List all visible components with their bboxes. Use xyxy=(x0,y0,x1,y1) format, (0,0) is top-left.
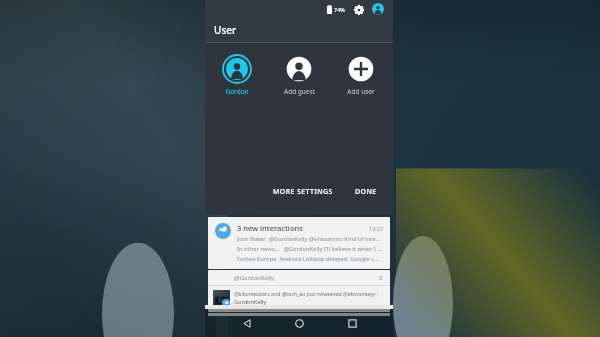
button[interactable]: Add guest xyxy=(273,53,325,98)
button[interactable]: Settings xyxy=(352,3,365,16)
staticText: Add user xyxy=(347,87,375,96)
staticText: User xyxy=(214,23,237,37)
button[interactable]: Current user xyxy=(371,2,385,16)
button[interactable]: Home xyxy=(288,312,310,334)
staticText: @GordonKelly xyxy=(234,274,379,282)
staticText: Forbes Europe Android Lollipop delayed. … xyxy=(237,255,379,263)
staticText: GordonKelly xyxy=(234,298,267,306)
button[interactable]: MORE SETTINGS xyxy=(269,183,337,201)
staticText: @kilonewaters and @tech_eu just retweete… xyxy=(234,290,379,297)
button[interactable]: Back xyxy=(236,312,258,334)
button[interactable]: DONE xyxy=(351,183,381,201)
staticText: 74% xyxy=(334,6,345,13)
staticText: MORE SETTINGS xyxy=(273,187,333,197)
button[interactable]: Add user xyxy=(335,53,387,98)
button[interactable]: Recents xyxy=(341,312,363,334)
staticText: Gordon xyxy=(225,87,249,96)
button[interactable]: Gordon xyxy=(211,53,263,98)
button[interactable]: @GordonKelly xyxy=(208,270,390,312)
staticText: 3 new interactions xyxy=(237,223,369,233)
button[interactable]: 3 new interactions xyxy=(208,217,390,269)
staticText: 3 xyxy=(379,274,383,282)
staticText: DONE xyxy=(355,187,377,197)
staticText: In other news... @GordonKelly I'll belie… xyxy=(237,245,383,253)
staticText: Add guest xyxy=(284,87,315,96)
staticText: Josh Baker @GordonKelly @ehsaanmo Kind o… xyxy=(237,235,381,243)
staticText: 12:27 xyxy=(369,225,384,232)
